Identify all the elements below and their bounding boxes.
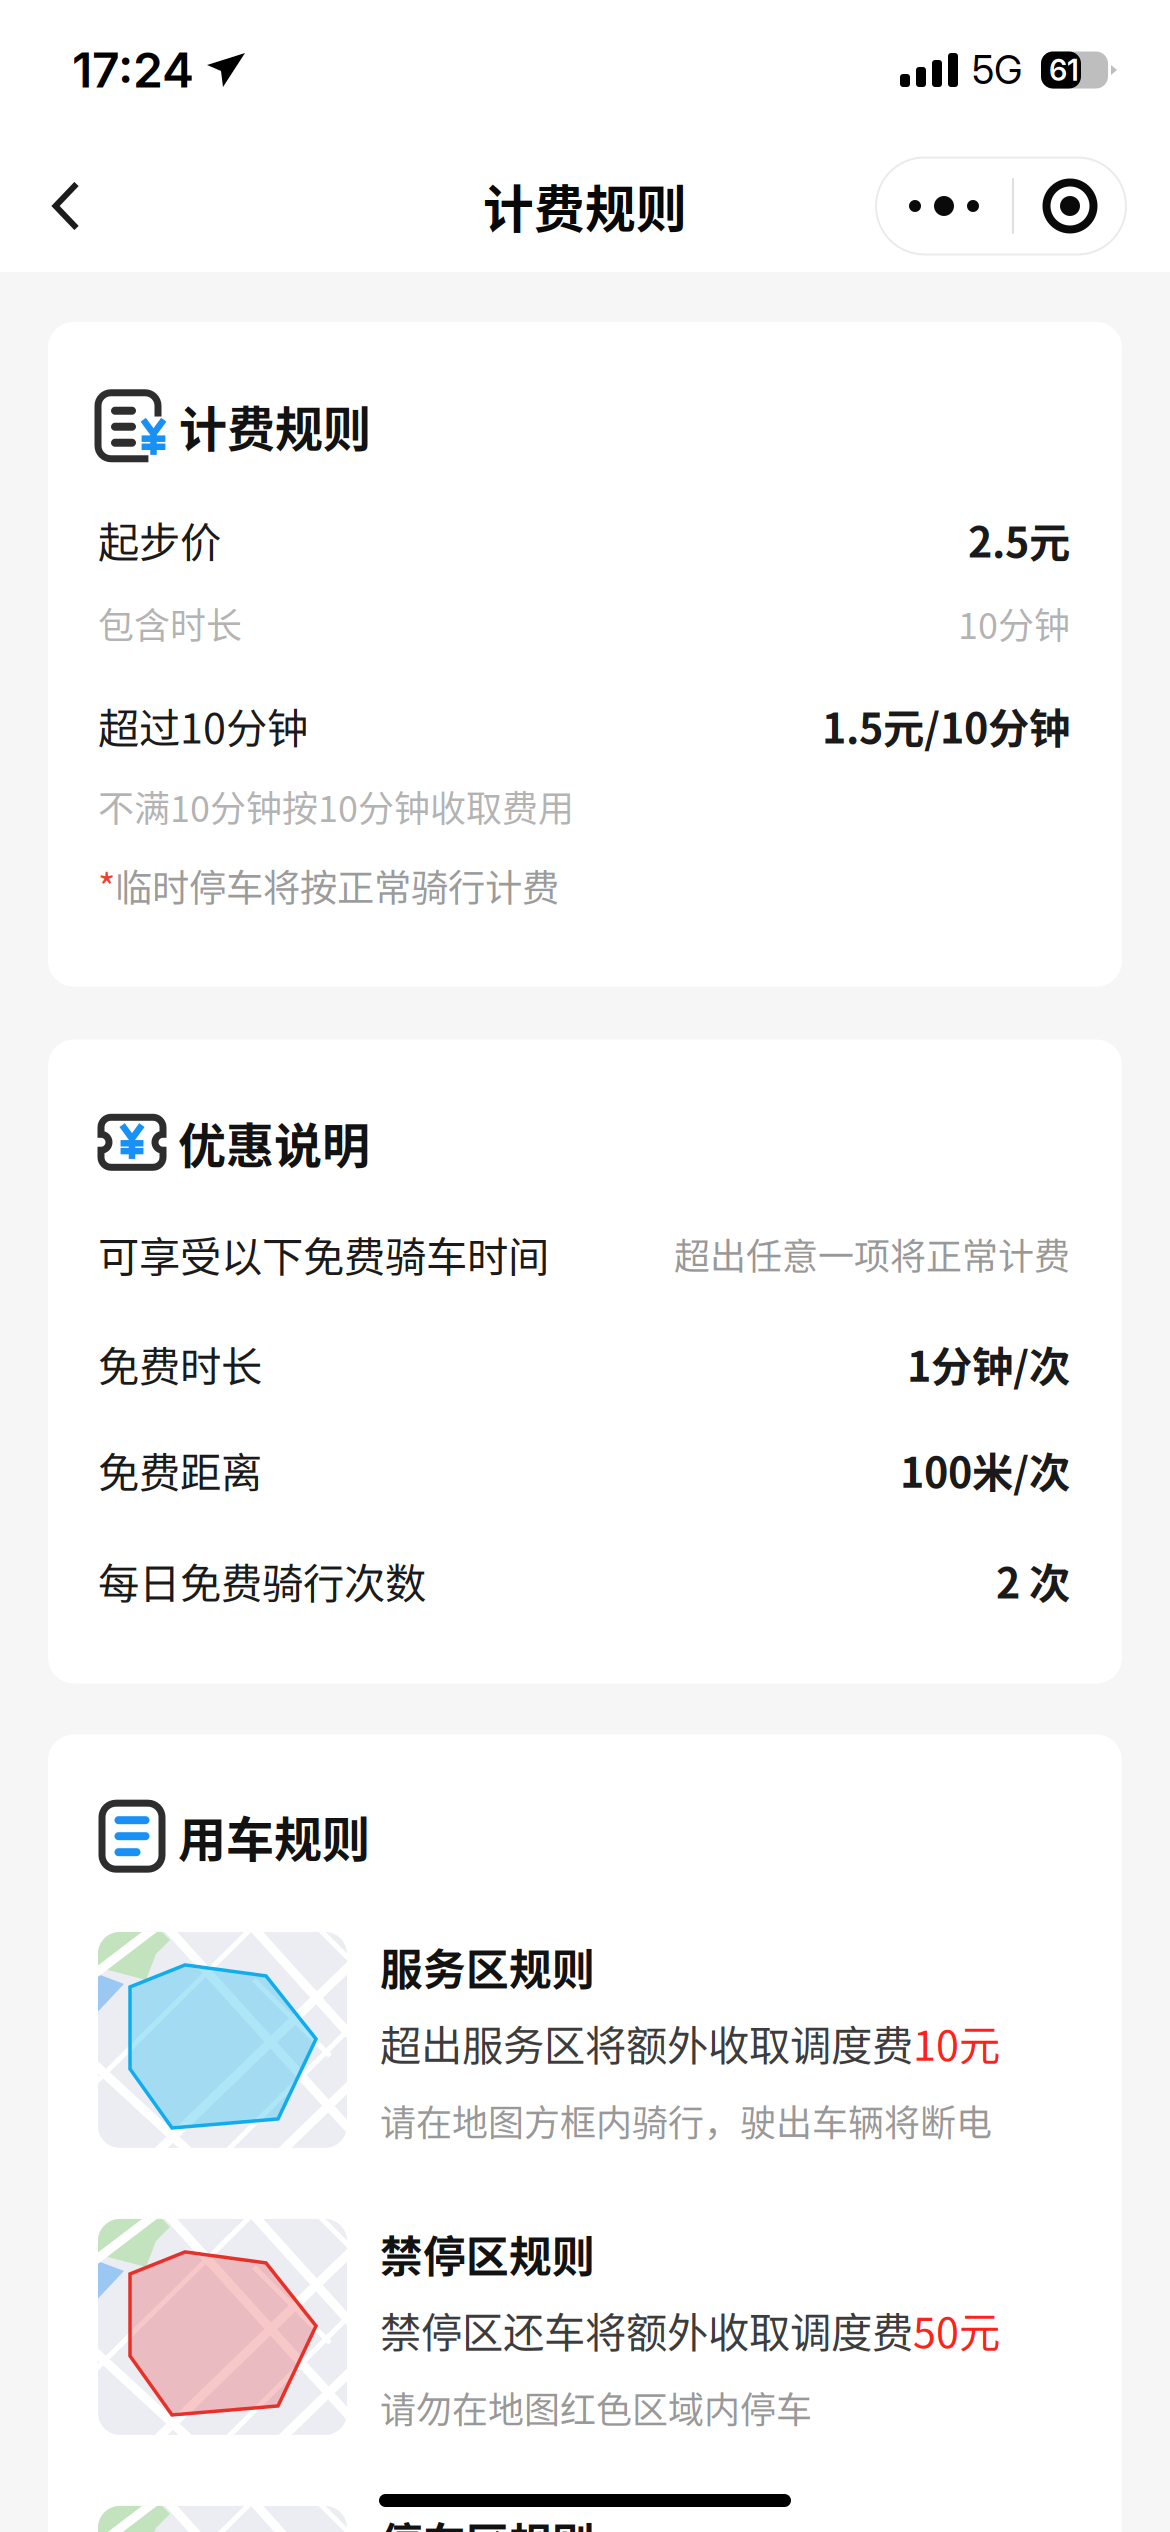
- staticText: 100米/次: [900, 1440, 1070, 1500]
- staticText: 10分钟: [958, 597, 1070, 649]
- staticText: 临时停车将按正常骑行计费: [115, 858, 559, 913]
- staticText: 超出服务区将额外收取调度费: [380, 2013, 913, 2073]
- staticText: 50元: [913, 2300, 1000, 2360]
- staticText: *: [98, 858, 115, 913]
- staticText: 服务区规则: [380, 1936, 595, 1998]
- staticText: 1分钟/次: [907, 1334, 1070, 1394]
- button[interactable]: 返回: [27, 158, 105, 254]
- button[interactable]: 更多: [876, 157, 1126, 254]
- staticText: 5G: [972, 47, 1022, 93]
- staticText: 优惠说明: [178, 1107, 370, 1177]
- staticText: 禁停区规则: [380, 2223, 595, 2285]
- staticText: 不满10分钟按10分钟收取费用: [98, 780, 574, 832]
- staticText: 计费规则: [179, 391, 371, 460]
- staticText: 超出任意一项将正常计费: [674, 1228, 1070, 1280]
- staticText: 17:24: [72, 41, 194, 99]
- staticText: 61: [1049, 52, 1079, 88]
- staticText: 2.5元: [968, 509, 1070, 569]
- staticText: 停车区规则: [380, 2510, 595, 2532]
- staticText: 免费时长: [98, 1334, 262, 1394]
- staticText: 免费距离: [98, 1440, 262, 1500]
- staticText: 可享受以下免费骑车时间: [98, 1224, 549, 1284]
- staticText: 1.5元/10分钟: [822, 695, 1070, 755]
- staticText: 10元: [913, 2013, 1000, 2073]
- staticText: 2 次: [996, 1551, 1070, 1610]
- staticText: 起步价: [98, 509, 221, 569]
- staticText: 计费规则: [483, 169, 687, 243]
- staticText: 请在地图方框内骑行，驶出车辆将断电: [380, 2095, 992, 2147]
- staticText: 每日免费骑行次数: [98, 1551, 426, 1610]
- staticText: 用车规则: [178, 1801, 370, 1871]
- staticText: 包含时长: [98, 597, 242, 649]
- staticText: 请勿在地图红色区域内停车: [380, 2382, 812, 2434]
- staticText: 禁停区还车将额外收取调度费: [380, 2300, 913, 2360]
- staticText: 超过10分钟: [98, 695, 308, 755]
